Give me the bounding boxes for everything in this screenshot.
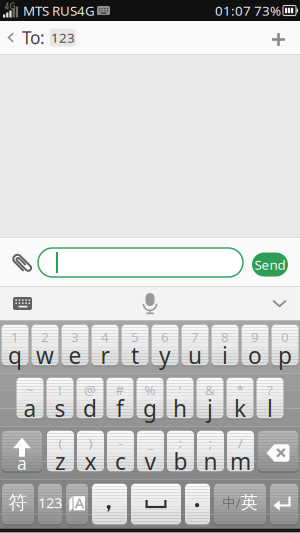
staticText: 0 (281, 328, 289, 346)
staticText: 9 (251, 328, 259, 346)
staticText: ~ (26, 381, 34, 399)
staticText: y (159, 340, 171, 370)
staticText: o (248, 340, 262, 370)
button[interactable]: : (167, 431, 194, 473)
staticText: j (207, 393, 213, 423)
staticText: MTS RUS4G (23, 2, 95, 19)
staticText: Send (254, 256, 285, 273)
staticText: ' (178, 381, 181, 399)
staticText: 7 (191, 328, 199, 346)
button[interactable]: _ (137, 431, 164, 473)
button[interactable] (0, 247, 34, 275)
staticText: # (115, 381, 124, 399)
staticText: 符 (8, 491, 27, 514)
button[interactable]: A (66, 484, 88, 526)
staticText: r (100, 340, 109, 370)
staticText: ; (208, 434, 212, 452)
button[interactable]: ' (166, 378, 193, 420)
button[interactable]: 0 (271, 325, 298, 367)
button[interactable]: 3 (61, 325, 88, 367)
button[interactable] (131, 484, 181, 526)
staticText: a (17, 452, 27, 475)
staticText: n (203, 446, 217, 476)
button[interactable] (34, 247, 243, 276)
button[interactable] (0, 32, 15, 43)
button[interactable]: # (106, 378, 133, 420)
staticText: ? (267, 381, 273, 399)
staticText: h (173, 393, 187, 423)
staticText: To: (22, 26, 45, 49)
staticText: 英 (240, 492, 257, 513)
button[interactable] (258, 431, 298, 473)
button[interactable] (185, 484, 210, 526)
staticText: & (205, 381, 215, 399)
staticText: 5 (131, 328, 139, 346)
button[interactable]: 6 (151, 325, 178, 367)
staticText: p (278, 340, 292, 370)
button[interactable]: / (227, 431, 254, 473)
staticText: c (115, 446, 126, 476)
staticText: - (118, 434, 122, 452)
staticText: a (23, 393, 36, 423)
staticText: 123 (51, 29, 75, 46)
staticText: q (8, 340, 22, 370)
button[interactable]: @ (76, 378, 103, 420)
staticText: s (54, 393, 65, 423)
button[interactable]: ) (77, 431, 104, 473)
staticText: d (83, 393, 97, 423)
button[interactable]: ? (256, 378, 283, 420)
button[interactable] (0, 297, 32, 310)
button[interactable]: ( (47, 431, 74, 473)
button[interactable] (270, 484, 298, 526)
staticText: 2 (41, 328, 49, 346)
button[interactable]: ~ (16, 378, 43, 420)
staticText: 01:07 73% (215, 2, 281, 19)
staticText: u (188, 340, 202, 370)
button[interactable] (272, 299, 300, 307)
staticText: 8 (221, 328, 229, 346)
button[interactable]: 符 (2, 484, 34, 526)
staticText: k (234, 393, 246, 423)
button[interactable]: * (226, 378, 253, 420)
button[interactable]: 2 (31, 325, 58, 367)
staticText: i (222, 340, 228, 370)
staticText: _ (147, 434, 153, 452)
staticText: 中/ (222, 494, 240, 511)
button[interactable]: a (2, 431, 42, 473)
button[interactable]: Send (243, 249, 288, 273)
staticText: t (131, 340, 139, 370)
staticText: ) (88, 434, 92, 452)
staticText: v (144, 446, 156, 476)
staticText: l (267, 393, 273, 423)
button[interactable] (139, 293, 161, 314)
button[interactable] (92, 484, 127, 526)
staticText: A (75, 493, 84, 513)
staticText: z (55, 446, 66, 476)
button[interactable]: ! (46, 378, 73, 420)
staticText: f (116, 393, 124, 423)
staticText: * (236, 381, 243, 399)
staticText: e (68, 340, 81, 370)
button[interactable]: - (107, 431, 134, 473)
button[interactable]: 8 (211, 325, 238, 367)
button[interactable]: 123 (38, 484, 62, 526)
staticText: % (144, 381, 155, 399)
staticText: 4G (4, 1, 15, 12)
button[interactable]: 5 (121, 325, 148, 367)
staticText: 123 (38, 493, 62, 512)
button[interactable]: 7 (181, 325, 208, 367)
button[interactable]: 123 (45, 28, 76, 46)
staticText: g (143, 393, 157, 423)
button[interactable]: 1 (1, 325, 28, 367)
button[interactable] (272, 31, 300, 44)
button[interactable]: 中/ (214, 484, 266, 526)
button[interactable]: ; (197, 431, 224, 473)
staticText: b (173, 446, 187, 476)
staticText: / (238, 434, 243, 452)
button[interactable]: % (136, 378, 163, 420)
staticText: ( (58, 434, 62, 452)
button[interactable]: 9 (241, 325, 268, 367)
button[interactable]: 4 (91, 325, 118, 367)
staticText: 4 (101, 328, 109, 346)
button[interactable]: & (196, 378, 223, 420)
